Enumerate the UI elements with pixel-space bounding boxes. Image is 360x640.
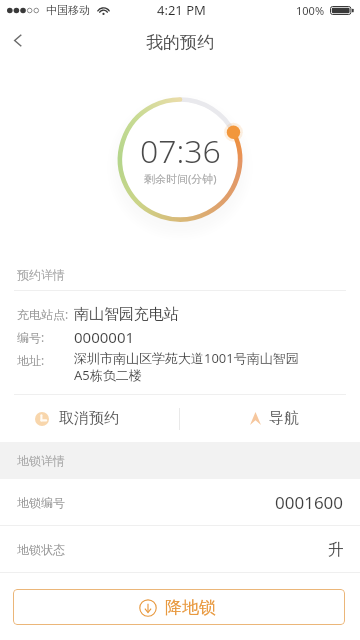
staticText: 升 xyxy=(328,540,344,560)
staticText: 南山智园充电站 xyxy=(74,305,179,324)
staticText: 预约详情 xyxy=(17,267,65,282)
staticText: 0000001 xyxy=(74,327,135,347)
button[interactable]: Back xyxy=(0,20,40,64)
staticText: 剩余时间(分钟) xyxy=(144,171,217,186)
staticText: 地址: xyxy=(17,352,74,368)
staticText: 地锁详情 xyxy=(17,453,65,468)
button[interactable]: 取消预约 xyxy=(0,395,179,442)
staticText: 我的预约 xyxy=(146,32,214,53)
staticText: 取消预约 xyxy=(59,409,119,428)
staticText: 07:36 xyxy=(140,129,221,173)
staticText: 100% xyxy=(296,3,325,18)
staticText: 地锁状态 xyxy=(17,542,65,557)
staticText: 0001600 xyxy=(275,491,344,514)
staticText: 降地锁 xyxy=(165,597,216,618)
staticText: 导航 xyxy=(269,409,299,428)
button[interactable]: 导航 xyxy=(180,395,360,442)
staticText: 地锁编号 xyxy=(17,495,65,510)
staticText: 中国移动 xyxy=(46,3,90,17)
staticText: 深圳市南山区学苑大道1001号南山智园 A5栋负二楼 xyxy=(74,349,299,383)
staticText: 充电站点: xyxy=(17,306,74,322)
staticText: 4:21 PM xyxy=(157,1,206,19)
button[interactable]: 降地锁 xyxy=(13,589,345,625)
staticText: 编号: xyxy=(17,329,74,345)
